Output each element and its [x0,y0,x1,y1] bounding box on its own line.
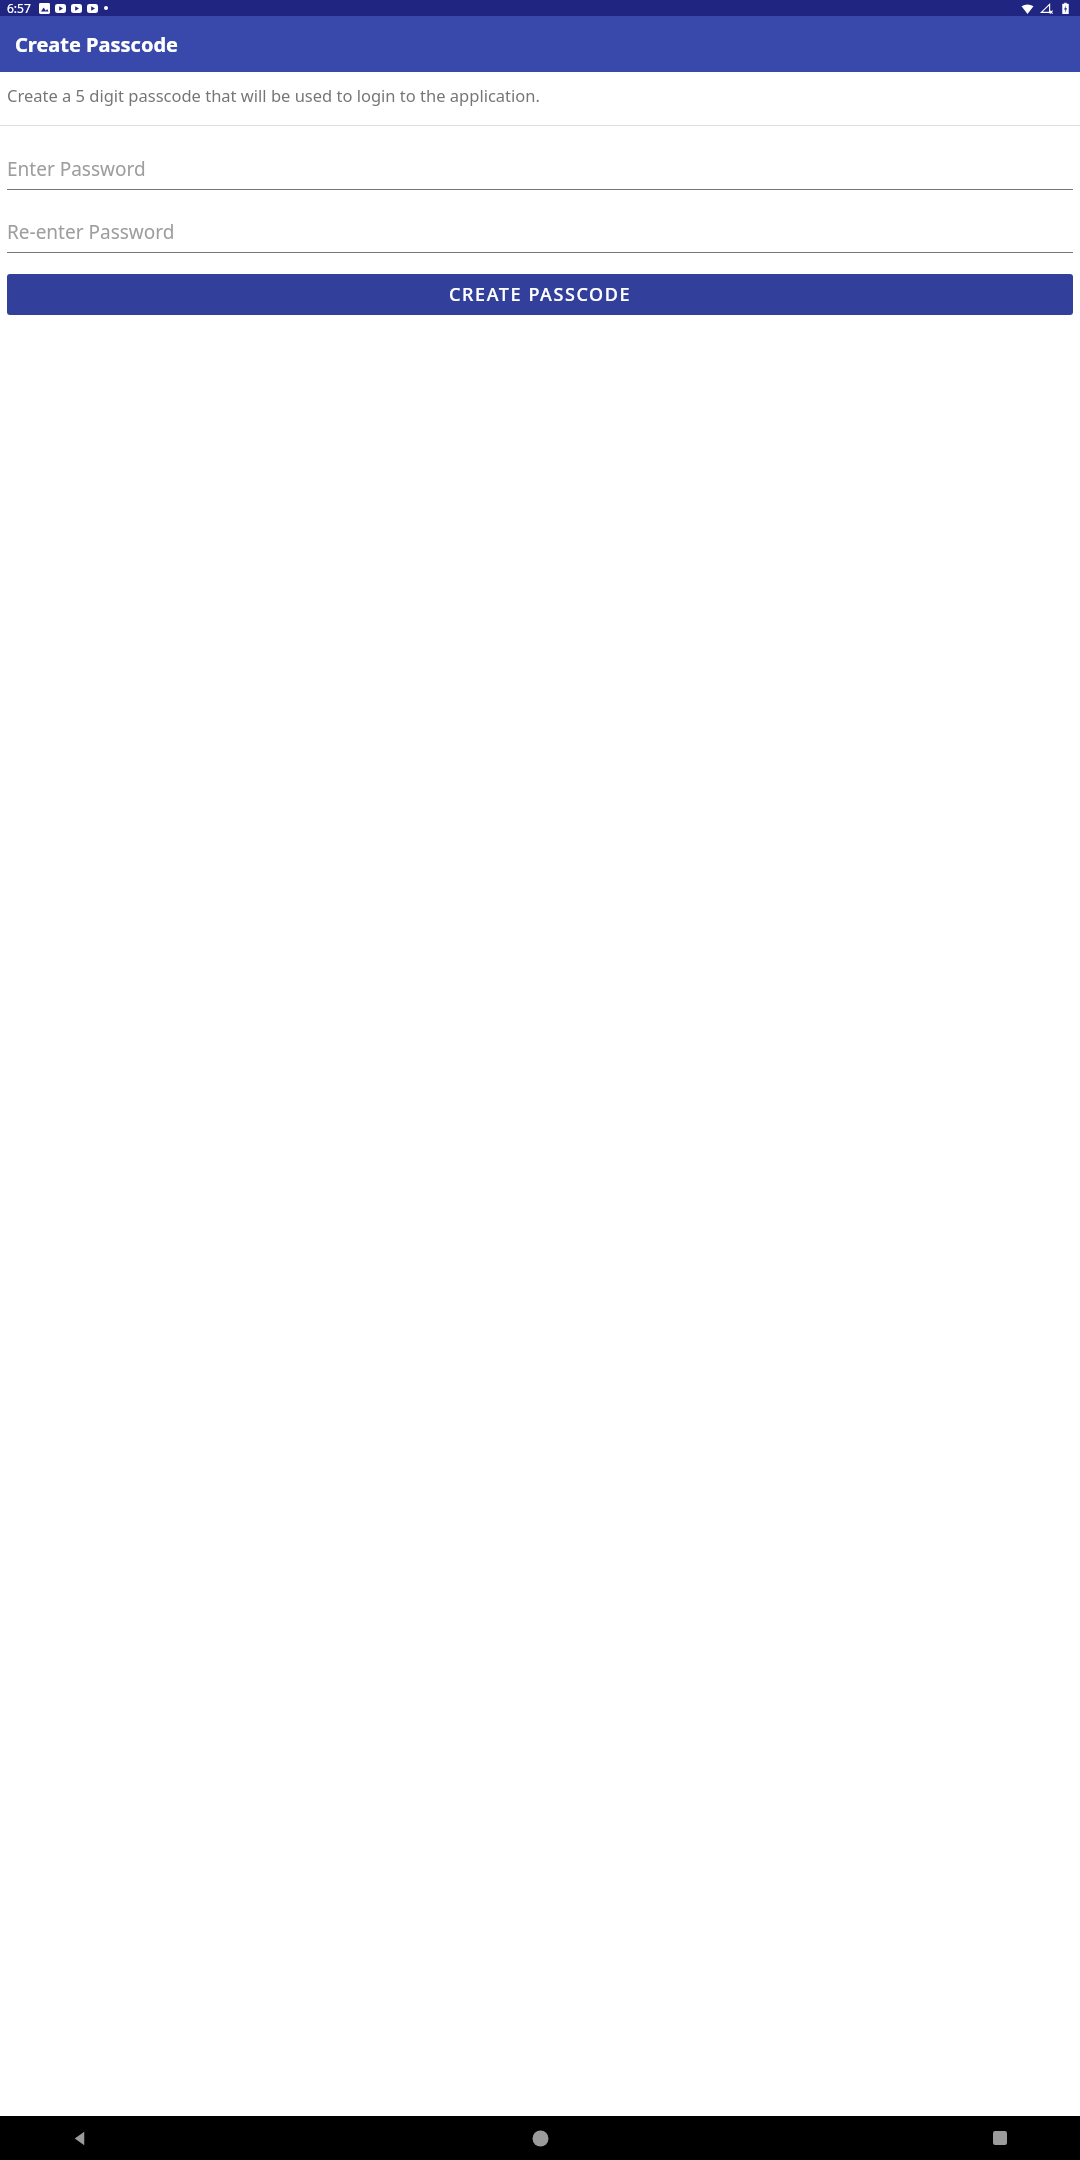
staticText: Create a 5 digit passcode that will be u… [7,84,540,106]
staticText: 6:57 [7,0,31,16]
staticText: Enter Password [7,156,146,182]
button[interactable]: Back [0,2116,160,2160]
button[interactable]: Recent apps [920,2116,1080,2160]
button[interactable]: CREATE PASSCODE [7,274,1073,315]
button[interactable]: Re-enter Password [7,216,1073,253]
staticText: Create Passcode [15,31,178,58]
staticText: CREATE PASSCODE [449,282,632,307]
staticText: Re-enter Password [7,219,175,245]
button[interactable]: Enter Password [7,153,1073,190]
button[interactable]: Home [460,2116,620,2160]
